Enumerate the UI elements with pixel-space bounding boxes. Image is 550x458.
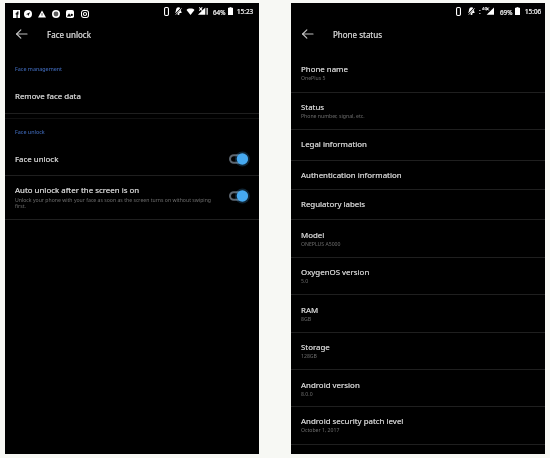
button[interactable]: Authentication information — [291, 161, 545, 189]
staticText: Regulatory labels — [301, 199, 366, 210]
button[interactable]: OxygenOS version — [291, 258, 545, 294]
staticText: RAM — [301, 305, 319, 316]
button[interactable]: Remove face data — [5, 80, 259, 113]
staticText: Phone number, signal, etc. — [301, 112, 365, 119]
staticText: 64% — [213, 8, 226, 17]
button[interactable]: Face unlock — [5, 143, 259, 175]
staticText: Legal information — [301, 139, 367, 150]
staticText: Auto unlock after the screen is on — [15, 185, 140, 196]
button[interactable]: Storage — [291, 333, 545, 369]
staticText: ONEPLUS A5000 — [301, 240, 341, 247]
staticText: Face unlock — [47, 29, 91, 40]
staticText: Face unlock — [15, 154, 59, 165]
staticText: Remove face data — [15, 91, 81, 102]
button[interactable]: Phone name — [291, 53, 545, 92]
staticText: Face unlock — [15, 128, 45, 135]
staticText: 8GB — [301, 315, 312, 322]
staticText: 4G — [482, 6, 488, 12]
staticText: Face management — [15, 65, 62, 72]
button[interactable]: RAM — [291, 295, 545, 332]
button[interactable]: Legal information — [291, 130, 545, 159]
staticText: Android security patch level — [301, 416, 404, 427]
button[interactable]: Android security patch level — [291, 407, 545, 443]
button[interactable]: Android version — [291, 370, 545, 407]
staticText: OxygenOS version — [301, 267, 370, 278]
staticText: 69% — [500, 8, 513, 17]
staticText: OnePlus 5 — [301, 74, 326, 81]
button[interactable]: Back — [302, 29, 313, 39]
button[interactable]: Status — [291, 93, 545, 129]
staticText: 15:06 — [525, 7, 542, 16]
staticText: Unlock your phone with your face as soon… — [15, 196, 215, 210]
button[interactable]: Back — [16, 29, 27, 39]
button[interactable]: Auto unlock after the screen is on — [5, 176, 259, 219]
button[interactable]: Model — [291, 220, 545, 257]
staticText: October 1, 2017 — [301, 426, 340, 433]
staticText: Model — [301, 230, 325, 241]
button[interactable]: Regulatory labels — [291, 190, 545, 219]
staticText: 5.0 — [301, 277, 309, 284]
staticText: Status — [301, 102, 325, 113]
staticText: : — [479, 7, 481, 16]
staticText: 128GB — [301, 352, 317, 359]
staticText: 8.0.0 — [301, 390, 313, 397]
staticText: Storage — [301, 342, 330, 353]
staticText: Phone name — [301, 64, 348, 75]
staticText: Authentication information — [301, 170, 402, 181]
staticText: Android version — [301, 380, 360, 391]
staticText: 15:23 — [237, 7, 254, 16]
staticText: Phone status — [333, 29, 383, 40]
